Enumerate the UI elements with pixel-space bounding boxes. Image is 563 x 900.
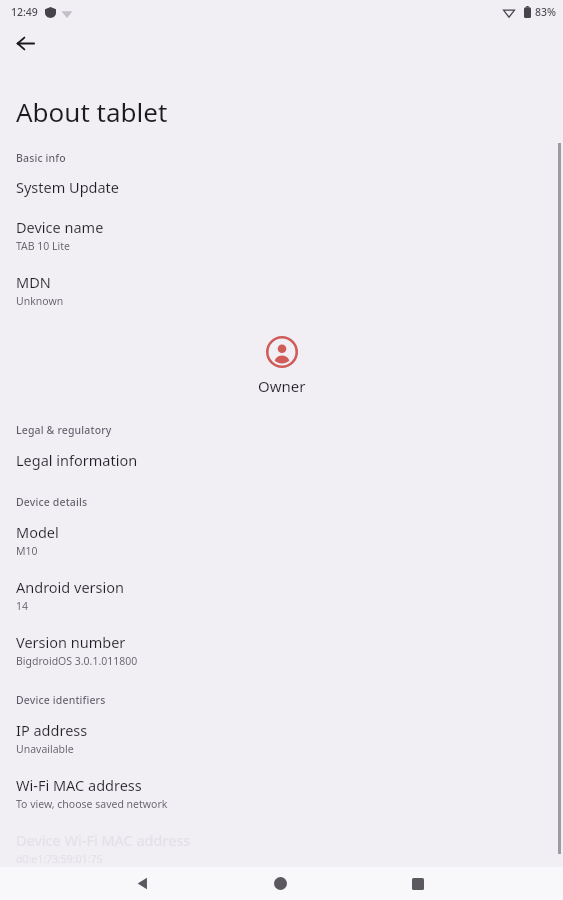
- staticText: Device name: [16, 217, 104, 237]
- staticText: 14: [16, 599, 29, 613]
- button[interactable]: Wi-Fi MAC address: [0, 775, 563, 811]
- button[interactable]: Owner: [242, 334, 322, 398]
- staticText: Unknown: [16, 294, 64, 308]
- staticText: Device details: [16, 495, 88, 509]
- button[interactable]: IP address: [0, 720, 563, 756]
- staticText: Unavailable: [16, 742, 74, 756]
- button[interactable]: Model: [0, 522, 563, 558]
- button[interactable]: Navigate up: [9, 27, 41, 59]
- staticText: M10: [16, 544, 38, 558]
- staticText: Legal information: [16, 450, 138, 470]
- staticText: 83%: [535, 5, 556, 19]
- staticText: About tablet: [16, 94, 168, 129]
- button[interactable]: Device Wi-Fi MAC address: [0, 830, 563, 866]
- button[interactable]: MDN: [0, 272, 563, 308]
- staticText: Legal & regulatory: [16, 423, 112, 437]
- button[interactable]: Back: [119, 867, 165, 900]
- staticText: d0:e1:73:59:01:75: [16, 852, 103, 866]
- button[interactable]: Version number: [0, 632, 563, 668]
- staticText: System Update: [16, 177, 120, 197]
- staticText: 12:49: [11, 5, 38, 19]
- button[interactable]: Android version: [0, 577, 563, 613]
- staticText: MDN: [16, 272, 51, 292]
- button[interactable]: Recent apps: [395, 867, 441, 900]
- staticText: Device Wi-Fi MAC address: [16, 830, 191, 850]
- staticText: Basic info: [16, 151, 66, 165]
- staticText: Wi-Fi MAC address: [16, 775, 142, 795]
- button[interactable]: Device name: [0, 217, 563, 253]
- button[interactable]: Home: [257, 867, 303, 900]
- button[interactable]: Legal information: [0, 450, 563, 470]
- staticText: Device identifiers: [16, 693, 106, 707]
- other: Owner: [266, 336, 298, 368]
- staticText: Owner: [258, 376, 306, 396]
- staticText: BigdroidOS 3.0.1.011800: [16, 654, 138, 668]
- staticText: Version number: [16, 632, 126, 652]
- staticText: TAB 10 Lite: [16, 239, 71, 253]
- button[interactable]: System Update: [0, 177, 563, 197]
- staticText: IP address: [16, 720, 88, 740]
- staticText: To view, choose saved network: [16, 797, 168, 811]
- staticText: Android version: [16, 577, 124, 597]
- staticText: Model: [16, 522, 59, 542]
